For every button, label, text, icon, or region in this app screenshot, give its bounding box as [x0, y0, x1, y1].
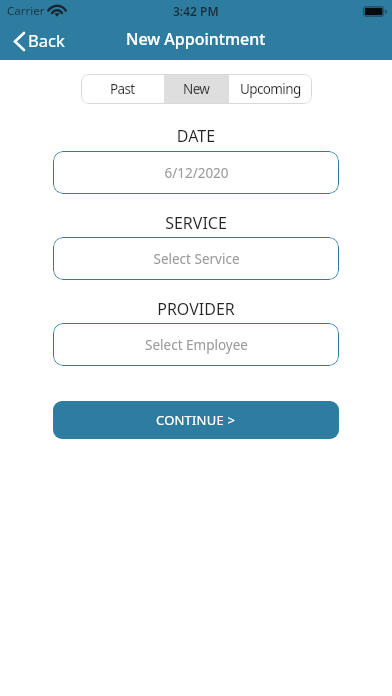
staticText: Select Service — [153, 250, 240, 268]
staticText: New Appointment — [126, 28, 266, 50]
staticText: PROVIDER — [0, 298, 392, 320]
staticText: Select Employee — [145, 336, 248, 354]
staticText: CONTINUE > — [156, 411, 236, 429]
staticText: SERVICE — [0, 212, 392, 234]
staticText: 6/12/2020 — [164, 164, 229, 182]
button[interactable]: Select Service — [53, 237, 339, 280]
button[interactable]: Select Employee — [53, 323, 339, 366]
staticText: Back — [28, 29, 65, 51]
staticText: Upcoming — [240, 80, 301, 98]
button[interactable]: New — [164, 74, 229, 104]
staticText: 3:42 PM — [173, 3, 219, 19]
staticText: New — [183, 80, 210, 98]
button[interactable]: CONTINUE > — [53, 401, 339, 439]
button[interactable]: Back — [0, 26, 77, 56]
staticText: DATE — [0, 125, 392, 147]
staticText: Carrier — [7, 3, 45, 19]
staticText: Past — [110, 80, 135, 98]
button[interactable]: Past — [81, 74, 164, 104]
button[interactable]: 6/12/2020 — [53, 151, 339, 194]
button[interactable]: Upcoming — [229, 74, 312, 104]
